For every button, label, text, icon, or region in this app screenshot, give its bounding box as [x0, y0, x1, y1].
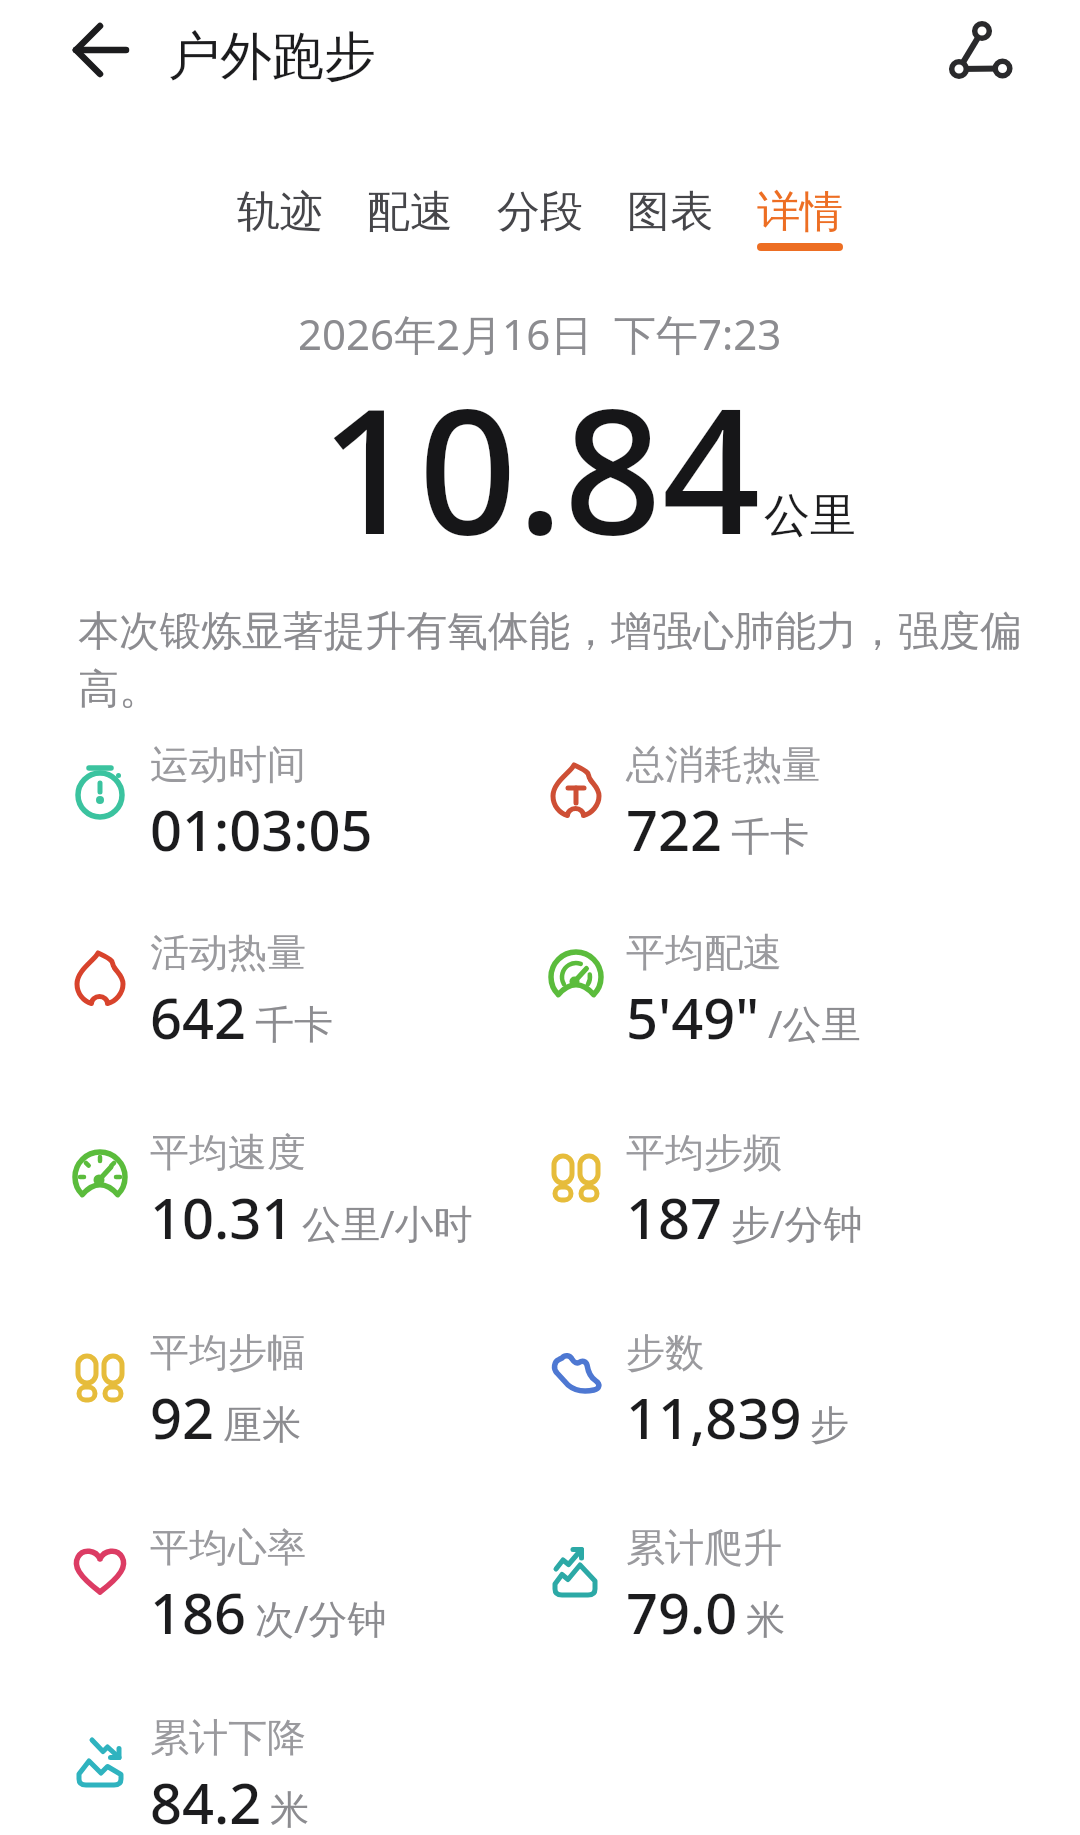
- staticText: 分段: [497, 185, 583, 239]
- staticText: 642: [150, 979, 247, 1055]
- staticText: 10.31: [150, 1179, 294, 1255]
- button[interactable]: 运动时间: [72, 740, 373, 867]
- staticText: 01:03:05: [150, 791, 373, 867]
- staticText: 平均步幅: [150, 1328, 306, 1377]
- staticText: 84.2: [150, 1764, 262, 1835]
- staticText: 步: [810, 1400, 849, 1449]
- button[interactable]: 平均配速: [548, 928, 861, 1055]
- staticText: 活动热量: [150, 928, 306, 977]
- button[interactable]: 轨迹: [237, 185, 323, 243]
- staticText: 厘米: [223, 1400, 301, 1449]
- button[interactable]: 平均步频: [548, 1128, 863, 1255]
- staticText: 平均速度: [150, 1128, 306, 1177]
- staticText: 步/分钟: [731, 1196, 863, 1249]
- staticText: 米: [270, 1785, 309, 1834]
- button[interactable]: [930, 10, 1030, 100]
- button[interactable]: 步数: [548, 1328, 849, 1455]
- staticText: 本次锻炼显著提升有氧体能，增强心肺能力，强度偏 高。: [78, 606, 1021, 715]
- staticText: /公里: [768, 996, 861, 1049]
- button[interactable]: 分段: [497, 185, 583, 243]
- button[interactable]: 总消耗热量: [548, 740, 821, 867]
- button[interactable]: [60, 22, 140, 82]
- staticText: 79.0: [626, 1574, 738, 1650]
- staticText: 总消耗热量: [626, 740, 821, 789]
- button[interactable]: 详情: [757, 185, 843, 251]
- button[interactable]: 累计爬升: [548, 1523, 785, 1650]
- staticText: 步数: [626, 1328, 704, 1377]
- staticText: 11,839: [626, 1379, 802, 1455]
- staticText: 配速: [367, 185, 453, 239]
- staticText: 92: [150, 1379, 215, 1455]
- button[interactable]: 活动热量: [72, 928, 333, 1055]
- staticText: 户外跑步: [168, 24, 376, 90]
- staticText: 运动时间: [150, 740, 306, 789]
- staticText: 图表: [627, 185, 713, 239]
- button[interactable]: 平均心率: [72, 1523, 387, 1650]
- staticText: 累计爬升: [626, 1523, 782, 1572]
- staticText: 10.84: [320, 350, 761, 584]
- staticText: 平均步频: [626, 1128, 782, 1177]
- staticText: 累计下降: [150, 1713, 306, 1762]
- staticText: 公里: [764, 487, 856, 545]
- button[interactable]: 图表: [627, 185, 713, 243]
- staticText: 2026年2月16日 下午7:23: [298, 305, 782, 362]
- staticText: 次/分钟: [255, 1591, 387, 1644]
- button[interactable]: 平均速度: [72, 1128, 473, 1255]
- staticText: 186: [150, 1574, 247, 1650]
- staticText: 5'49": [626, 979, 760, 1055]
- staticText: 平均心率: [150, 1523, 306, 1572]
- button[interactable]: 平均步幅: [72, 1328, 306, 1455]
- button[interactable]: 配速: [367, 185, 453, 243]
- staticText: 米: [746, 1595, 785, 1644]
- staticText: 722: [626, 791, 723, 867]
- staticText: 详情: [757, 185, 843, 239]
- staticText: 公里/小时: [302, 1196, 473, 1249]
- staticText: 平均配速: [626, 928, 782, 977]
- button[interactable]: 累计下降: [72, 1713, 309, 1835]
- staticText: 千卡: [731, 812, 809, 861]
- staticText: 千卡: [255, 1000, 333, 1049]
- staticText: 轨迹: [237, 185, 323, 239]
- staticText: 187: [626, 1179, 723, 1255]
